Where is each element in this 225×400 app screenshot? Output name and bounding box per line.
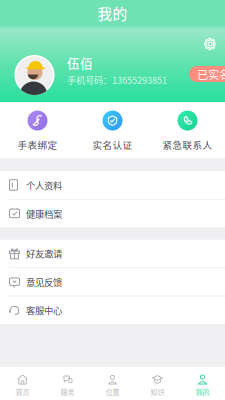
- button[interactable]: 健康档案: [0, 200, 225, 227]
- button[interactable]: 实名认证: [75, 110, 150, 151]
- staticText: 伍佰: [67, 54, 93, 72]
- staticText: 手表绑定: [17, 137, 57, 151]
- staticText: 实名认证: [92, 137, 132, 151]
- staticText: 客服中心: [26, 303, 62, 317]
- button[interactable]: 设置: [198, 32, 222, 56]
- button[interactable]: 客服中心: [0, 297, 225, 324]
- button[interactable]: 意见反馈: [0, 268, 225, 296]
- staticText: 我的: [97, 2, 127, 24]
- staticText: 健康档案: [26, 207, 62, 220]
- staticText: 好友邀请: [26, 247, 62, 260]
- staticText: 位置: [105, 386, 119, 397]
- staticText: 紧急联系人: [162, 137, 212, 151]
- staticText: 意见反馈: [26, 275, 62, 289]
- button[interactable]: 知识: [135, 367, 180, 400]
- button[interactable]: 个人资料: [0, 171, 225, 199]
- staticText: 首页: [15, 386, 29, 397]
- staticText: 已实名: [197, 66, 225, 82]
- button[interactable]: 服务: [45, 367, 90, 400]
- staticText: 服务: [60, 386, 74, 397]
- staticText: 知识: [150, 386, 164, 397]
- staticText: 手机号码：13655293851: [67, 73, 167, 86]
- button[interactable]: 位置: [90, 367, 135, 400]
- button[interactable]: 我的: [180, 367, 225, 400]
- button[interactable]: 首页: [0, 367, 45, 400]
- button[interactable]: 已实名: [189, 66, 225, 82]
- staticText: 个人资料: [26, 178, 62, 192]
- staticText: 我的: [195, 386, 209, 397]
- button[interactable]: 好友邀请: [0, 240, 225, 267]
- button[interactable]: 紧急联系人: [150, 110, 225, 151]
- button[interactable]: 手表绑定: [0, 110, 75, 151]
